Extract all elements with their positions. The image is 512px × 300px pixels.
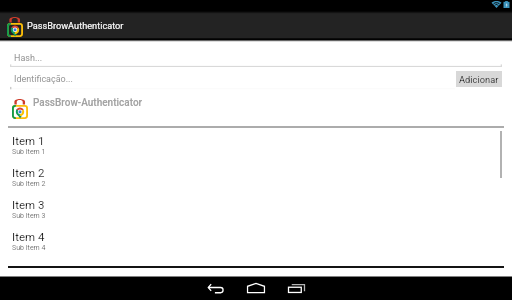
button[interactable]: Adicionar <box>456 71 502 87</box>
button[interactable]: Item 3 <box>0 197 512 229</box>
staticText: Sub Item 2 <box>12 180 46 188</box>
staticText: Sub Item 3 <box>12 212 46 220</box>
staticText: Sub Item 1 <box>12 148 46 156</box>
staticText: PassBrow-Authenticator <box>33 97 143 109</box>
staticText: Item 3 <box>12 198 45 211</box>
button[interactable]: Item 2 <box>0 165 512 197</box>
staticText: Hash... <box>14 53 43 64</box>
staticText: Sub Item 4 <box>12 244 46 252</box>
button[interactable]: Item 1 <box>0 133 512 165</box>
staticText: Item 2 <box>12 166 45 179</box>
staticText: PassBrowAuthenticator <box>27 20 124 31</box>
staticText: Identificação... <box>14 74 73 85</box>
button[interactable]: Recent apps <box>284 274 310 299</box>
staticText: Item 1 <box>12 134 45 147</box>
button[interactable]: Item 4 <box>0 229 512 261</box>
staticText: Item 4 <box>12 230 45 243</box>
staticText: Adicionar <box>459 74 499 85</box>
button[interactable]: Home <box>243 274 269 299</box>
button[interactable]: Back <box>203 274 229 299</box>
